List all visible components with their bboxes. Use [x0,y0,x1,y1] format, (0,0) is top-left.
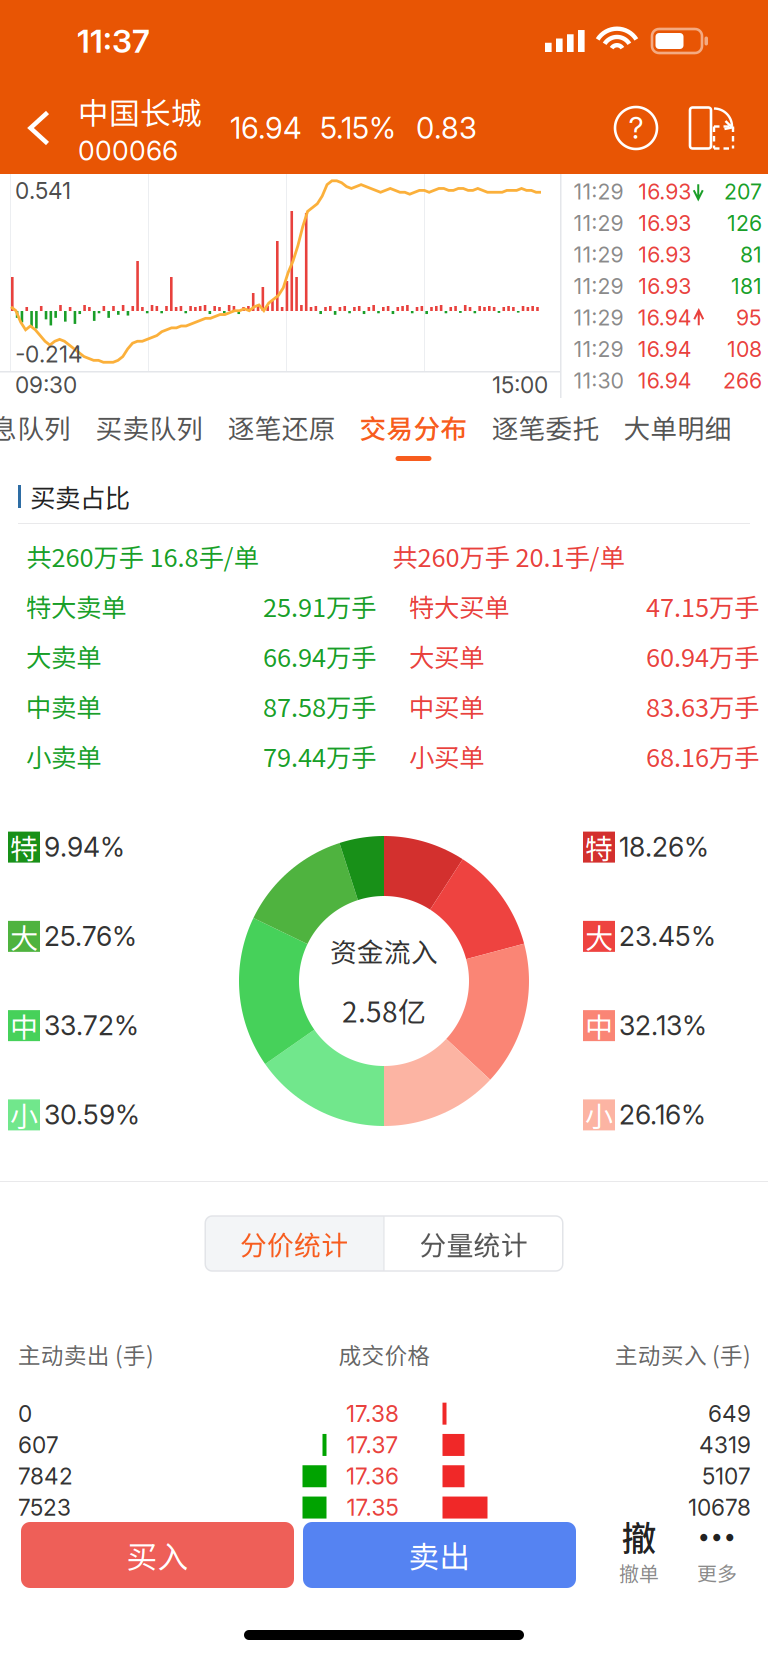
staticText: 60.94万手 [646,638,759,674]
button[interactable]: 逐笔还原 [215,398,347,470]
staticText: 中卖单 [26,688,101,724]
button[interactable]: 息队列 [0,398,83,470]
staticText: 买入 [126,1533,188,1577]
staticText: 66.94万手 [263,638,376,674]
staticText: 小卖单 [26,738,101,774]
button[interactable]: ••• [678,1514,756,1596]
staticText: 95 [736,305,762,331]
staticText: 266 [723,368,762,394]
staticText: 小 [585,1095,613,1135]
staticText: 特 [585,827,613,867]
staticText: 撤 [621,1511,656,1561]
staticText: 特大买单 [409,588,509,624]
staticText: 2.58亿 [342,990,426,1030]
button[interactable]: Back [0,82,78,174]
staticText: 11:29 [573,273,623,299]
button[interactable]: Help [610,97,662,159]
staticText: 607 [18,1431,59,1459]
staticText: 649 [708,1400,751,1427]
staticText: 资金流入 [330,931,438,970]
staticText: 中 [585,1005,613,1046]
staticText: 0.541 [15,177,71,204]
button[interactable]: Change layout [690,97,750,159]
staticText: ? [628,110,643,146]
staticText: 11:29 [573,210,623,236]
staticText: 30.59% [44,1099,140,1131]
staticText: 小买单 [409,738,484,774]
staticText: 09:30 [15,371,77,399]
staticText: 交易分布 [359,408,467,446]
staticText: -0.214 [15,341,83,368]
staticText: 9.94% [44,831,125,863]
staticText: 分价统计 [240,1224,348,1263]
staticText: 25.76% [44,920,137,952]
button[interactable]: 逐笔委托 [479,398,611,470]
staticText: 81 [740,242,762,268]
staticText: 主动卖出 (手) [18,1338,154,1370]
staticText: 11:30 [573,368,623,394]
staticText: 中买单 [409,688,484,724]
staticText: 特 [10,827,38,867]
staticText: 大卖单 [26,638,101,674]
staticText: 特大卖单 [26,588,126,624]
staticText: 主动买入 (手) [615,1338,751,1370]
staticText: 买卖占比 [30,478,130,515]
button[interactable]: 撤 [600,1514,678,1596]
staticText: 15:00 [492,371,548,399]
staticText: 大 [10,916,38,957]
staticText: 共260万手 16.8手/单 [26,538,258,574]
staticText: ••• [697,1522,736,1550]
staticText: 成交价格 [338,1338,430,1370]
staticText: 000066 [78,135,178,167]
staticText: 10678 [688,1494,751,1521]
staticText: 7523 [18,1494,71,1521]
staticText: 25.91万手 [263,588,376,624]
button[interactable]: 卖出 [303,1514,576,1596]
button[interactable]: 大单明细 [611,398,743,470]
staticText: 5107 [702,1462,751,1490]
staticText: 16.94 [230,110,302,146]
staticText: 更多 [697,1558,737,1587]
staticText: 分量统计 [420,1224,528,1263]
staticText: 撤单 [619,1558,659,1587]
staticText: 17.35 [346,1494,398,1521]
staticText: 16.93 [638,179,691,205]
staticText: 共260万手 20.1手/单 [392,538,624,574]
staticText: 大买单 [409,638,484,674]
staticText: 7842 [18,1462,73,1490]
staticText: 4319 [699,1431,751,1459]
staticText: 逐笔委托 [491,408,599,446]
staticText: 126 [727,210,762,236]
button[interactable]: 交易分布 [347,398,479,470]
button[interactable]: 买入 [21,1514,294,1596]
staticText: 68.16万手 [646,738,759,774]
button[interactable]: 买卖队列 [83,398,215,470]
staticText: 16.93 [638,273,691,299]
staticText: 17.38 [346,1400,399,1427]
staticText: 16.93 [638,242,691,268]
staticText: 181 [731,273,762,299]
staticText: 小 [10,1095,38,1135]
staticText: 18.26% [619,831,709,863]
staticText: 11:29 [573,179,623,205]
staticText: 11:29 [573,336,623,362]
staticText: 32.13% [619,1009,707,1042]
staticText: 中国长城 [78,89,202,134]
staticText: 17.36 [346,1462,399,1490]
staticText: 0 [18,1400,32,1427]
button[interactable]: 分量统计 [385,1216,563,1271]
staticText: 11:37 [77,22,150,60]
staticText: 5.15% [320,110,396,146]
staticText: 大单明细 [623,408,731,446]
staticText: 买卖队列 [95,408,203,446]
staticText: 中 [10,1005,38,1046]
staticText: 108 [727,336,762,362]
staticText: 83.63万手 [646,688,759,724]
staticText: 207 [724,179,762,205]
staticText: 87.58万手 [263,688,376,724]
staticText: 26.16% [619,1099,706,1131]
staticText: 16.94 [638,368,692,394]
button[interactable]: 分价统计 [205,1216,383,1271]
staticText: 11:29 [573,305,623,331]
staticText: 79.44万手 [263,738,376,774]
